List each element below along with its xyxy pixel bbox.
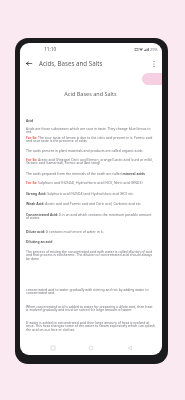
- staticText: For Ex: The sour taste of lemon is due t…: [26, 135, 155, 143]
- staticText: If water is added to concentrated acid t…: [26, 320, 155, 332]
- staticText: Strong Acid: Sulphuric acid (H2SO4) and …: [26, 191, 134, 196]
- staticText: Acids are those substances which are sou…: [26, 126, 155, 134]
- staticText: Weak Acid: Acetic acid and Formic acid a…: [26, 201, 142, 206]
- staticText: Diluting an acid: [26, 239, 53, 244]
- staticText: The acids prepared from the minerals of …: [26, 171, 146, 176]
- staticText: 29%: [150, 47, 158, 52]
- staticText: For Ex: Acetic acid (Vinegar) Citric aci…: [26, 157, 155, 165]
- staticText: The acids present in plant materials and…: [26, 148, 143, 153]
- button[interactable]: Recent apps: [47, 342, 59, 354]
- button[interactable]: Back: [124, 342, 136, 354]
- button[interactable]: Bookmark: [142, 73, 162, 85]
- staticText: When concentrated acid is added to water…: [26, 304, 155, 312]
- staticText: Dilute acid: It contains much more of wa…: [26, 229, 104, 234]
- staticText: Concentrated Acid: It is an acid which c…: [26, 212, 155, 220]
- staticText: Acids, Bases and Salts: [39, 59, 103, 67]
- button[interactable]: Home: [85, 342, 97, 354]
- staticText: Acid Bases and Salts: [26, 90, 155, 97]
- button[interactable]: More options: [148, 58, 159, 69]
- staticText: concentrated acid to water gradually wit…: [26, 287, 155, 295]
- staticText: 11:10: [44, 46, 57, 53]
- staticText: Acid: [26, 118, 34, 123]
- staticText: For Ex: Sulphuric acid (H2SO4), Hydrochl…: [26, 180, 143, 185]
- staticText: The process of mixing the concentrated a…: [26, 249, 155, 261]
- button[interactable]: Back: [23, 58, 34, 69]
